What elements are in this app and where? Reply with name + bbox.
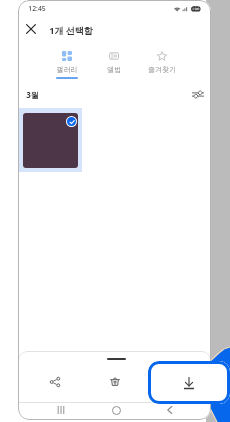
button[interactable]: Selected photo (18, 108, 82, 172)
staticText: 앨범 (94, 65, 134, 74)
button[interactable]: 즐겨찾기 (142, 47, 182, 83)
staticText: 갤러리 (47, 65, 87, 74)
button[interactable]: Share (46, 373, 64, 391)
staticText: 12:45 (28, 4, 46, 13)
button[interactable]: Back (162, 402, 178, 418)
button[interactable]: Home (108, 402, 124, 418)
button[interactable]: 갤러리 (47, 47, 87, 83)
button[interactable]: Download (148, 361, 230, 404)
button[interactable]: Close (23, 21, 39, 37)
button[interactable]: Recents (53, 402, 69, 418)
staticText: 1개 선택함 (49, 24, 93, 36)
staticText: 즐겨찾기 (142, 65, 182, 74)
button[interactable]: Delete (106, 373, 124, 391)
button[interactable]: 앨범 (94, 47, 134, 83)
button[interactable]: Sort options (190, 86, 206, 102)
staticText: 3월 (26, 89, 39, 100)
